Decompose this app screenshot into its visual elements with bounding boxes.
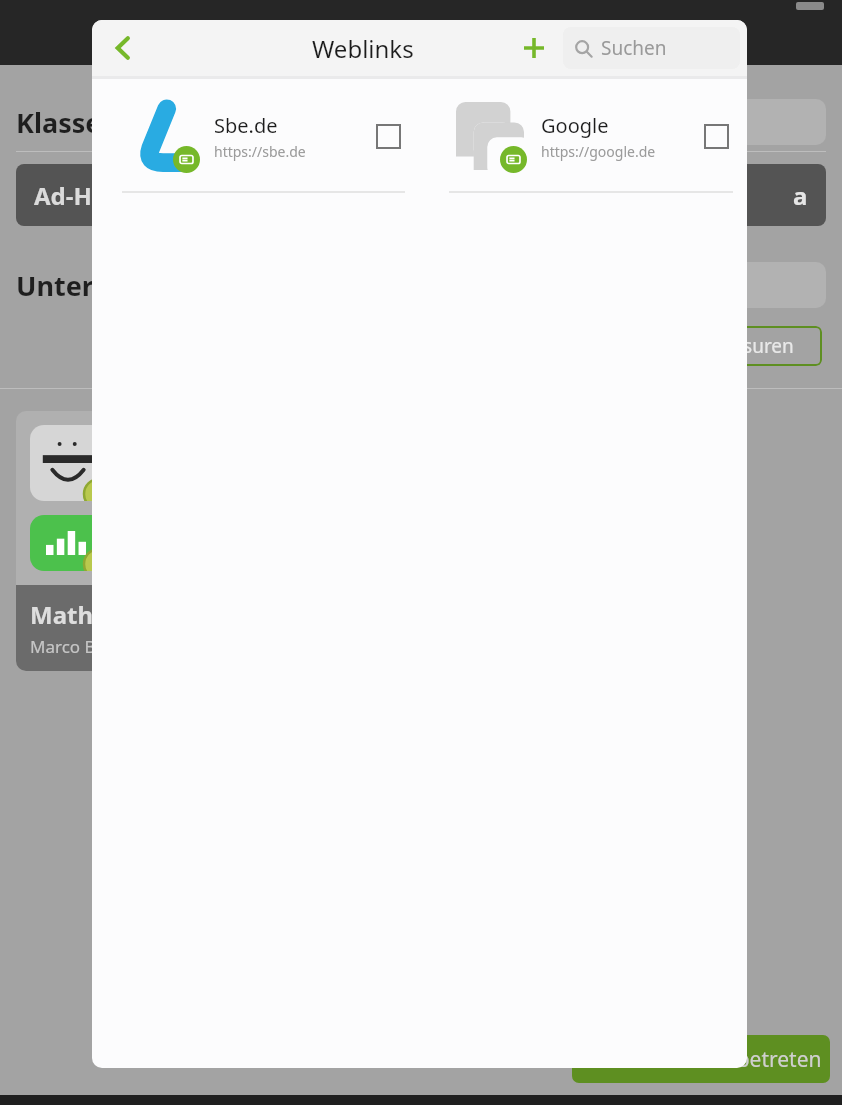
button[interactable]: Ad-Hoc Klassenzimmer bbox=[16, 164, 826, 226]
staticText: Ad-Hoc Klassenzimmer bbox=[34, 179, 308, 212]
staticText: Klausuren bbox=[704, 333, 794, 359]
button[interactable]: Suchen bbox=[563, 27, 740, 69]
staticText: https://sbe.de bbox=[214, 142, 306, 161]
staticText: Unterricht bbox=[16, 267, 158, 304]
button[interactable]: Back bbox=[100, 25, 146, 71]
button[interactable]: Mathe bbox=[16, 411, 206, 671]
button[interactable] bbox=[666, 99, 826, 145]
button[interactable]: Select Sbe.de bbox=[371, 119, 405, 153]
button[interactable]: Google bbox=[419, 81, 747, 193]
staticText: Klassenzimmer bbox=[16, 104, 222, 141]
button[interactable]: Select Google bbox=[699, 119, 733, 153]
staticText: Mathe bbox=[30, 598, 108, 631]
staticText: a bbox=[793, 179, 808, 212]
button[interactable]: Klausuren bbox=[676, 326, 822, 366]
staticText: Suchen bbox=[601, 35, 667, 61]
staticText: Google bbox=[541, 112, 609, 139]
button[interactable]: Klassenzimmer betreten bbox=[572, 1035, 830, 1083]
staticText: https://google.de bbox=[541, 142, 656, 161]
staticText: Weblinks bbox=[312, 32, 414, 65]
staticText: Klassenzimmer betreten bbox=[581, 1045, 822, 1074]
button[interactable]: Sbe.de bbox=[92, 81, 419, 193]
staticText: Sbe.de bbox=[214, 112, 278, 139]
button[interactable]: Add weblink bbox=[512, 26, 556, 70]
staticText: Marco Beck bbox=[30, 635, 123, 658]
button[interactable] bbox=[666, 262, 826, 308]
